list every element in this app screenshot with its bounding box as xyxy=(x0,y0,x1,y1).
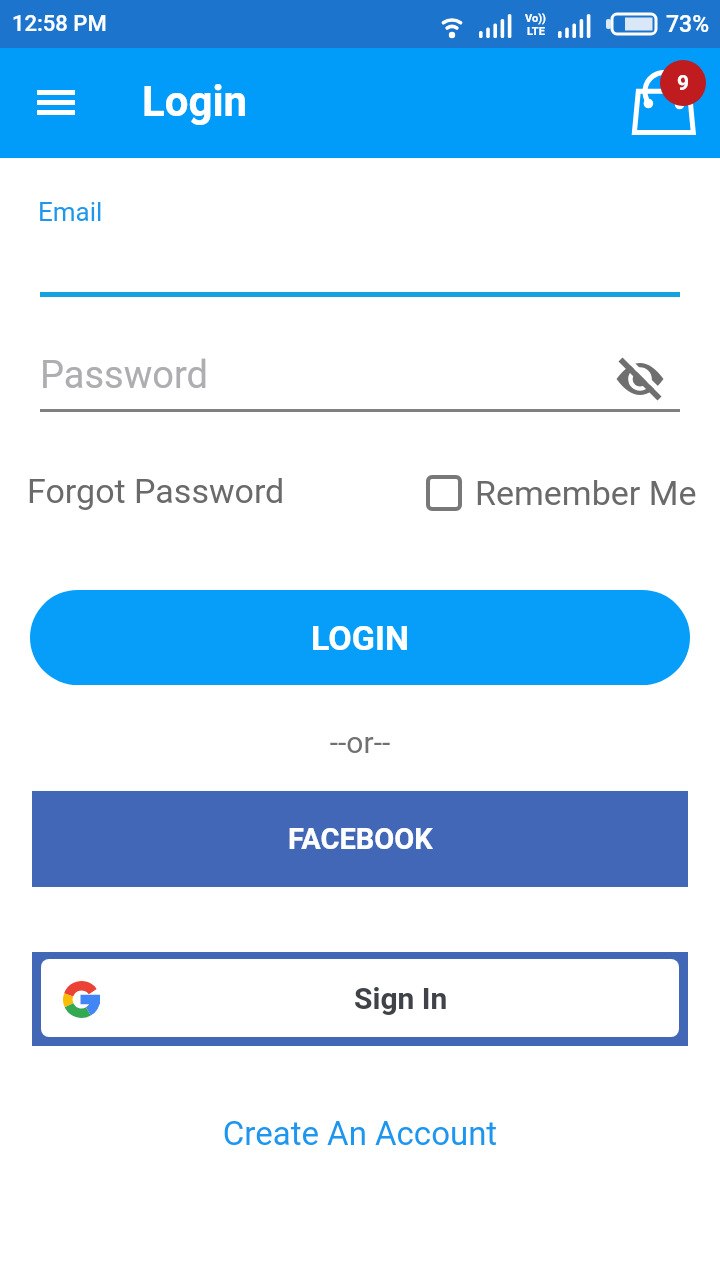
button[interactable]: Forgot Password xyxy=(27,471,285,511)
staticText: 12:58 PM xyxy=(12,11,107,37)
button[interactable] xyxy=(24,75,88,131)
staticText: LOGIN xyxy=(311,618,409,658)
staticText: Email xyxy=(38,197,103,227)
staticText: Login xyxy=(142,77,248,126)
staticText: Sign In xyxy=(354,981,448,1016)
staticText: 73% xyxy=(666,11,710,38)
button[interactable]: FACEBOOK xyxy=(32,791,688,887)
staticText: Password xyxy=(40,353,208,398)
staticText: 9 xyxy=(677,71,690,96)
staticText: --or-- xyxy=(0,725,720,760)
staticText: FACEBOOK xyxy=(288,822,433,856)
staticText: Remember Me xyxy=(475,473,697,513)
staticText: LTE xyxy=(527,25,545,38)
button[interactable]: Remember Me xyxy=(426,473,697,513)
button[interactable]: 9 xyxy=(612,50,712,150)
staticText: Vo)) xyxy=(525,12,546,25)
button[interactable]: Create An Account xyxy=(0,1114,720,1153)
button[interactable]: Sign In xyxy=(32,952,688,1046)
button[interactable]: LOGIN xyxy=(30,590,690,685)
